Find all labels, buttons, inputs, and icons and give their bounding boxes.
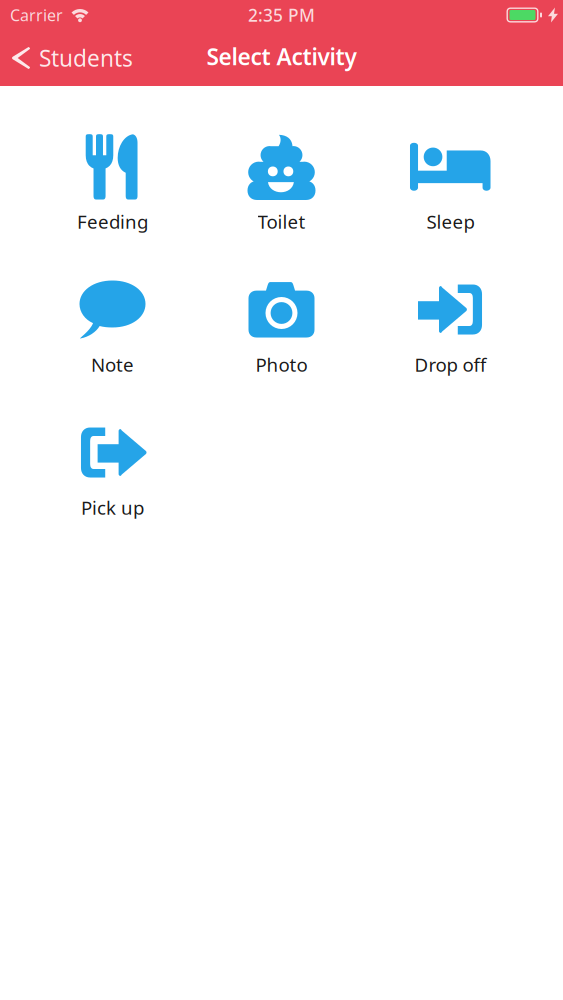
- button[interactable]: Feeding: [28, 86, 197, 229]
- staticText: Sleep: [426, 209, 474, 234]
- staticText: Note: [91, 352, 134, 377]
- button[interactable]: Toilet: [197, 86, 366, 229]
- button[interactable]: Pick up: [28, 372, 197, 515]
- staticText: Pick up: [81, 495, 144, 520]
- staticText: Carrier: [10, 4, 63, 26]
- staticText: Drop off: [414, 352, 486, 377]
- staticText: Students: [39, 43, 133, 73]
- staticText: Select Activity: [206, 41, 356, 71]
- button[interactable]: Sleep: [366, 86, 535, 229]
- staticText: Feeding: [77, 209, 148, 234]
- button[interactable]: Students: [0, 34, 143, 82]
- staticText: Toilet: [257, 209, 305, 234]
- button[interactable]: Photo: [197, 229, 366, 372]
- staticText: 2:35 PM: [248, 3, 315, 26]
- button[interactable]: Note: [28, 229, 197, 372]
- button[interactable]: Drop off: [366, 229, 535, 372]
- staticText: Photo: [255, 352, 307, 377]
